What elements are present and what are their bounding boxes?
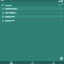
button[interactable]: Search [58,3,61,6]
staticText: Morning update [5,7,17,9]
staticText: Design review [5,15,16,17]
button[interactable]: Compose [60,57,63,60]
button[interactable]: Release notes [1,19,63,22]
staticText: 10:30 · Meeting room [5,13,17,14]
staticText: Draft saved [5,21,12,22]
staticText: Release notes [5,19,15,21]
button[interactable]: Menu [1,3,4,6]
staticText: Attachments · 3 [5,17,14,18]
staticText: Weekly summary ready [5,9,19,10]
button[interactable]: Home [0,61,22,64]
button[interactable]: Morning update [1,7,63,10]
button[interactable]: Design review [1,15,63,18]
button[interactable]: More options [61,3,63,5]
staticText: Inbox [5,3,12,6]
staticText: Chats [31,63,34,64]
staticText: 9:41 [1,0,4,2]
staticText: Profile [52,63,56,64]
button[interactable]: Chats [22,61,43,64]
button[interactable]: Team standup [1,11,63,14]
button[interactable]: Profile [43,61,64,64]
staticText: Team standup [5,11,16,13]
